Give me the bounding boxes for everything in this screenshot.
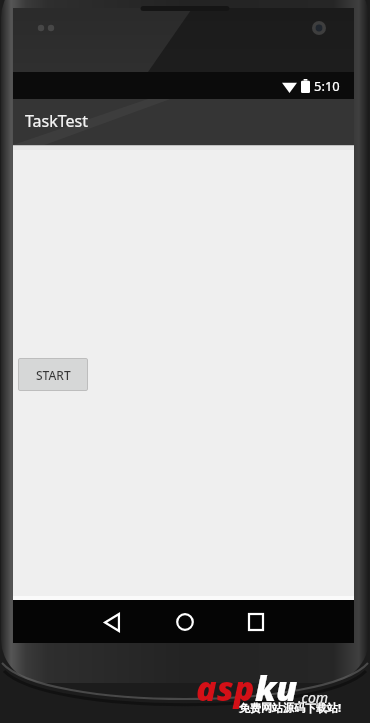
staticText: ku (255, 665, 298, 711)
button[interactable]: Recent apps (231, 601, 281, 643)
staticText: TaskTest (25, 110, 89, 132)
staticText: .com (298, 688, 329, 707)
staticText: 免费网站源码下载站! (239, 700, 342, 715)
button[interactable]: Home (160, 601, 210, 643)
staticText: asp (196, 665, 255, 711)
staticText: 5:10 (314, 77, 340, 95)
button[interactable]: START (18, 358, 88, 391)
staticText: START (36, 367, 71, 383)
button[interactable]: Back (88, 601, 138, 643)
